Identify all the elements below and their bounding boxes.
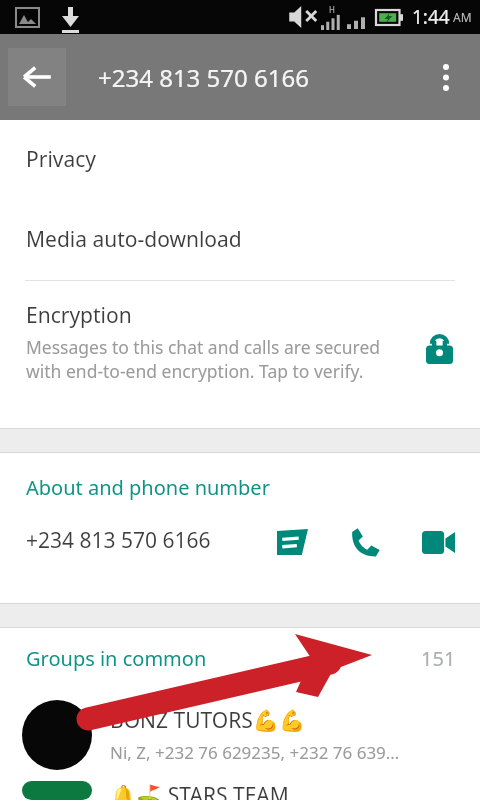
button[interactable]: More options <box>420 51 472 103</box>
staticText: +234 813 570 6166 <box>98 61 309 94</box>
button[interactable]: Groups in common <box>0 628 480 688</box>
staticText: 🔔⛳ STARS TEAM <box>110 781 289 800</box>
button[interactable]: BONZ TUTORS💪💪 <box>0 688 480 781</box>
staticText: Privacy <box>26 145 97 174</box>
button[interactable]: Video call <box>415 519 461 565</box>
button[interactable]: Encryption <box>0 281 480 428</box>
button[interactable]: Media auto-download <box>0 198 480 280</box>
staticText: H <box>329 4 335 15</box>
button[interactable]: Call <box>342 519 388 565</box>
button[interactable]: Back <box>8 48 66 106</box>
staticText: Messages to this chat and calls are secu… <box>26 335 390 383</box>
staticText: Groups in common <box>26 645 207 672</box>
button[interactable]: 🔔⛳ STARS TEAM <box>0 781 480 800</box>
staticText: About and phone number <box>26 474 270 501</box>
staticText: 151 <box>421 645 456 672</box>
staticText: Ni, Z, +232 76 629235, +232 76 639… <box>110 741 400 764</box>
button[interactable]: Message <box>269 519 315 565</box>
staticText: Encryption <box>26 301 132 330</box>
staticText: Media auto-download <box>26 225 242 254</box>
staticText: BONZ TUTORS💪💪 <box>110 706 306 735</box>
staticText: 1:44 <box>412 4 450 30</box>
button[interactable]: About and phone number <box>0 453 480 603</box>
staticText: +234 813 570 6166 <box>26 526 211 555</box>
staticText: AM <box>453 9 472 25</box>
button[interactable]: Privacy <box>0 120 480 198</box>
